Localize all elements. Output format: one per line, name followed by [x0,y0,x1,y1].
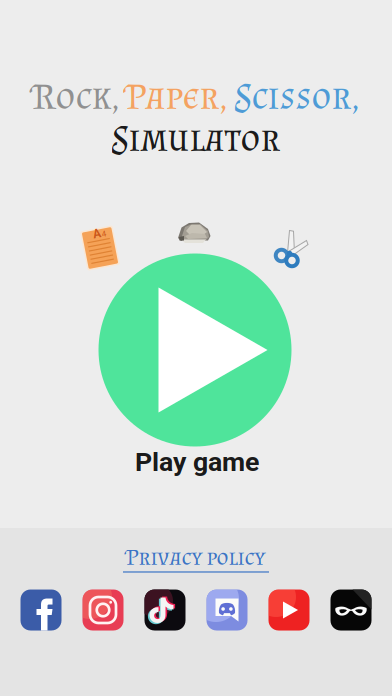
button[interactable]: Instagram [82,589,123,630]
staticText [119,74,126,118]
staticText: Play game [135,446,259,478]
button[interactable]: More [330,589,371,630]
button[interactable]: TikTok [144,589,185,630]
button[interactable]: Play game [135,446,259,478]
staticText: Privacy policy [126,543,265,570]
staticText: Simulator [111,116,280,160]
staticText: Scissor, [234,74,359,118]
staticText: Paper, [126,74,227,118]
staticText: Rock, [32,74,119,118]
staticText: A [96,226,104,240]
staticText: 4 [104,230,108,240]
button[interactable]: Facebook [20,589,61,630]
button[interactable]: YouTube [268,589,309,630]
button[interactable] [98,253,291,446]
button[interactable]: Privacy policy [123,543,269,573]
button[interactable]: Discord [206,589,247,630]
